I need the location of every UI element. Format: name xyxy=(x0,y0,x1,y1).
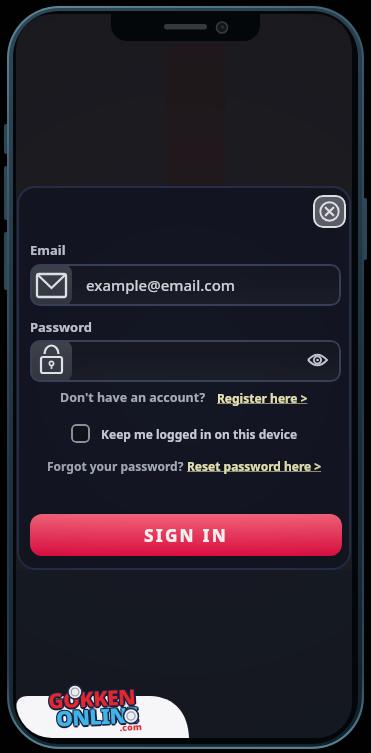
staticText: .com xyxy=(119,720,143,733)
staticText: Don't have an account? xyxy=(60,389,206,406)
staticText: example@email.com xyxy=(86,275,235,295)
button[interactable]: Reset password here > xyxy=(187,458,322,474)
staticText: ONLINE xyxy=(54,700,138,734)
staticText: GOKKEN xyxy=(47,681,137,715)
staticText: ONLINE xyxy=(55,702,139,735)
staticText: Forgot your password? xyxy=(47,458,187,474)
staticText: GOKKEN xyxy=(48,683,138,717)
staticText: GOKKEN xyxy=(46,681,136,715)
staticText: GOKKEN xyxy=(49,682,139,716)
staticText: ONLINE xyxy=(54,699,138,733)
button[interactable] xyxy=(313,195,346,228)
button[interactable] xyxy=(30,264,341,306)
staticText: SIGN IN xyxy=(144,524,228,547)
staticText: GOKKEN xyxy=(46,682,136,716)
button[interactable]: SIGN IN xyxy=(30,514,342,556)
staticText: ONLINE xyxy=(57,700,141,733)
staticText: GOKKEN xyxy=(48,681,138,715)
staticText: ONLINE xyxy=(55,700,139,733)
button[interactable]: Register here > xyxy=(217,390,308,406)
staticText: ONLINE xyxy=(56,701,140,734)
staticText: ONLINE xyxy=(56,699,140,732)
staticText: Password xyxy=(30,318,92,336)
staticText: ONLINE xyxy=(54,701,138,735)
staticText: GOKKEN xyxy=(46,683,136,717)
staticText: GOKKEN xyxy=(47,682,137,716)
staticText: GOKKEN xyxy=(47,684,137,718)
button[interactable]: Keep me logged in on this device xyxy=(17,424,351,443)
button[interactable] xyxy=(30,340,341,382)
staticText: Keep me logged in on this device xyxy=(101,426,298,442)
staticText: ONLINE xyxy=(55,699,139,732)
staticText: Email xyxy=(30,241,66,259)
